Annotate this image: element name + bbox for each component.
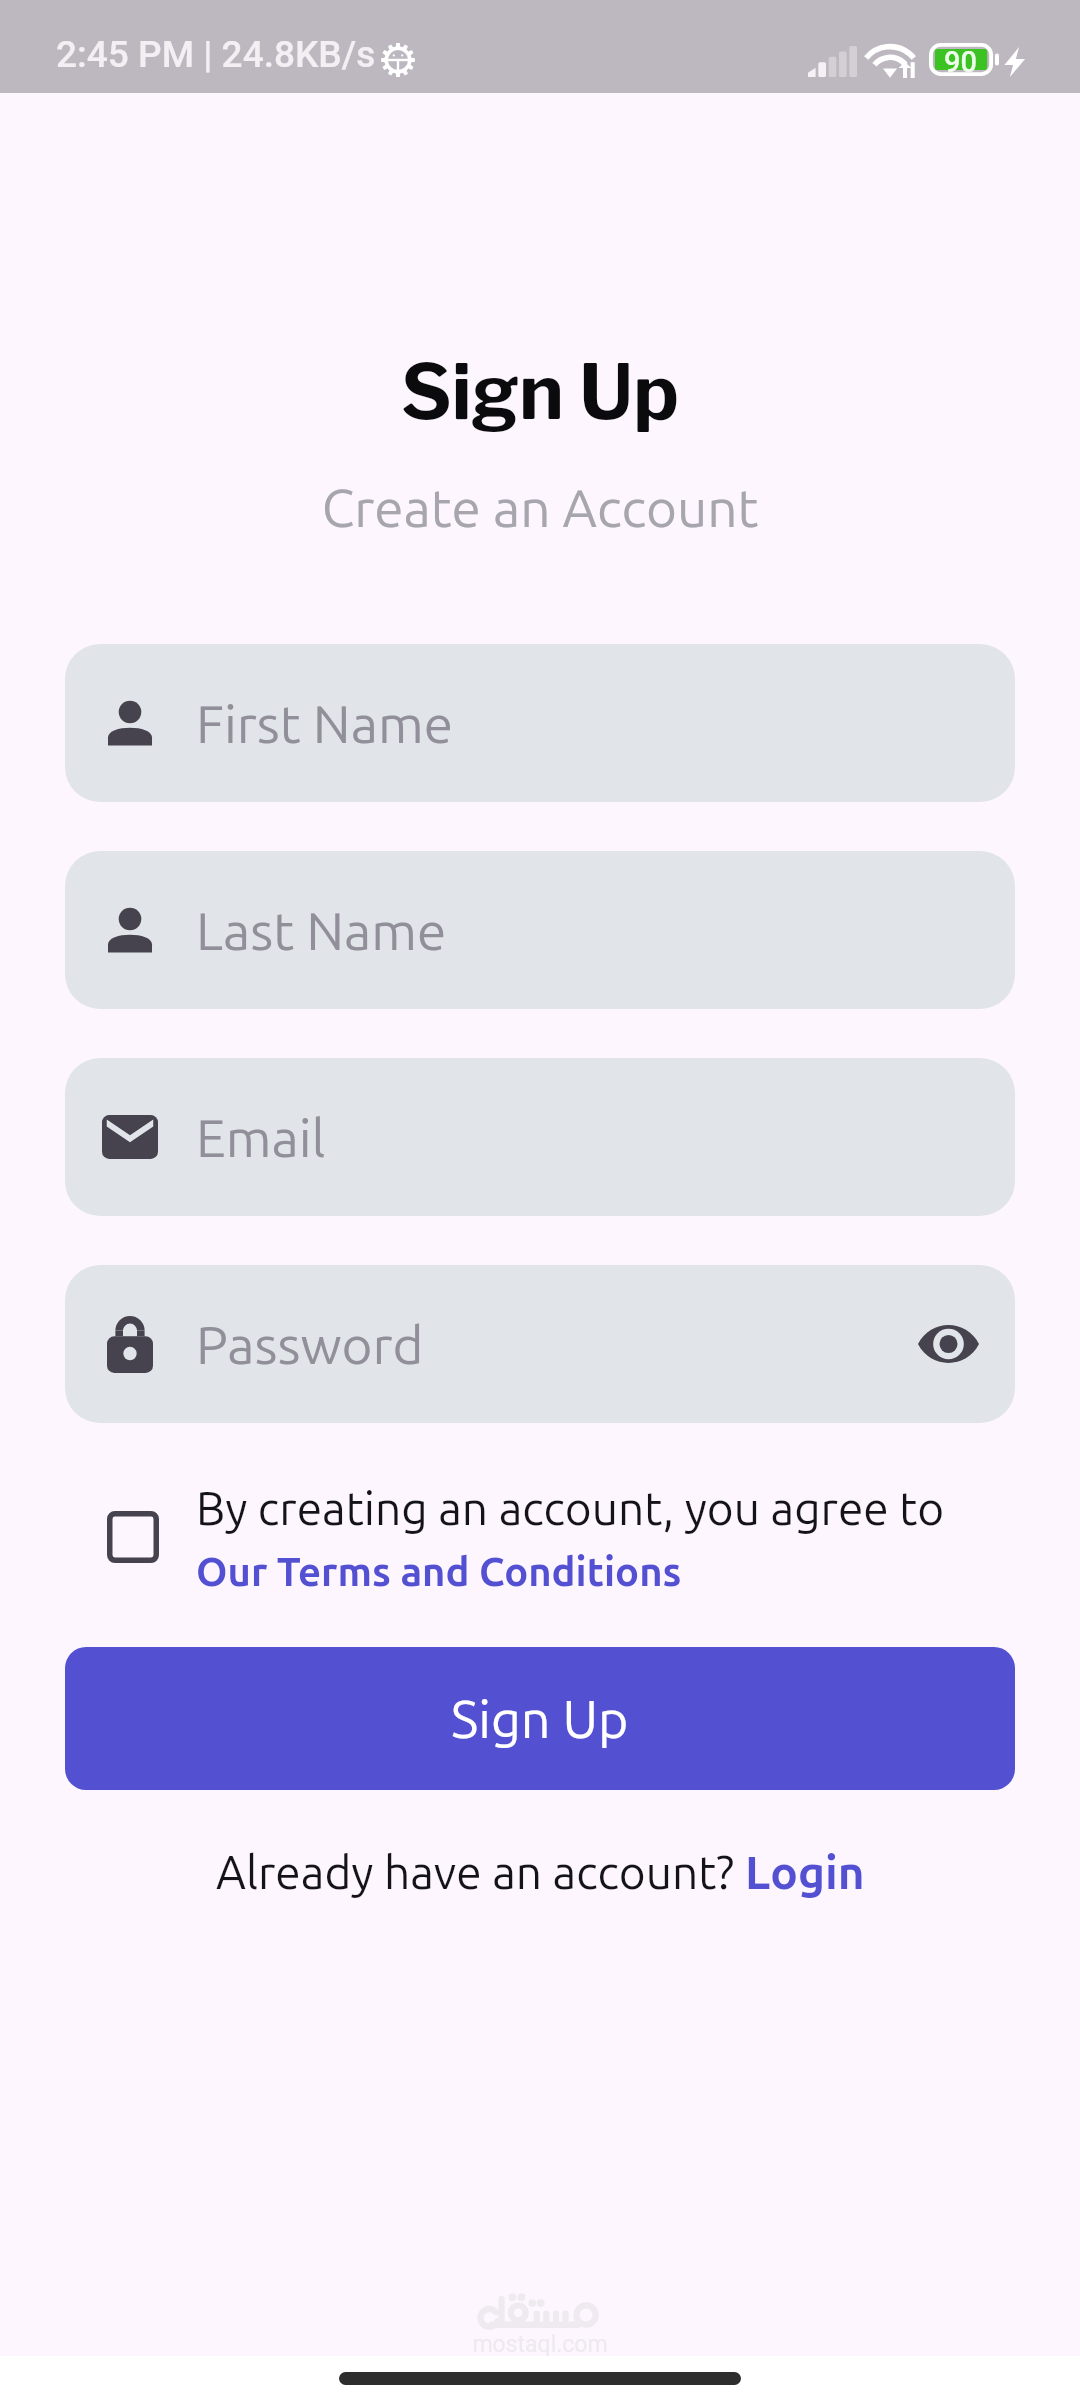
staticText: First Name [196,694,1015,753]
button[interactable]: Email [65,1058,1015,1216]
staticText: mostaql.com [468,2331,612,2358]
button[interactable]: Last Name [65,851,1015,1009]
staticText: 2:45 PM | 24.8KB/s [56,33,376,76]
button[interactable]: Sign Up [65,1647,1015,1790]
staticText: By creating an account, you agree to [196,1482,945,1534]
staticText: Last Name [196,901,1015,960]
staticText: Password [196,1315,900,1374]
staticText: Create an Account [0,478,1080,537]
button[interactable]: Show password [900,1296,996,1392]
staticText: Already have an account? [216,1846,745,1898]
staticText: Sign Up [0,347,1080,438]
button[interactable]: First Name [65,644,1015,802]
button[interactable]: Our Terms and Conditions [196,1549,682,1594]
staticText: Email [196,1108,1015,1167]
staticText: Sign Up [451,1690,629,1748]
button[interactable]: Password [65,1265,1015,1423]
button[interactable]: Login [745,1846,865,1898]
button[interactable]: Agree to terms and conditions [107,1511,159,1563]
staticText: 90 [944,45,977,79]
